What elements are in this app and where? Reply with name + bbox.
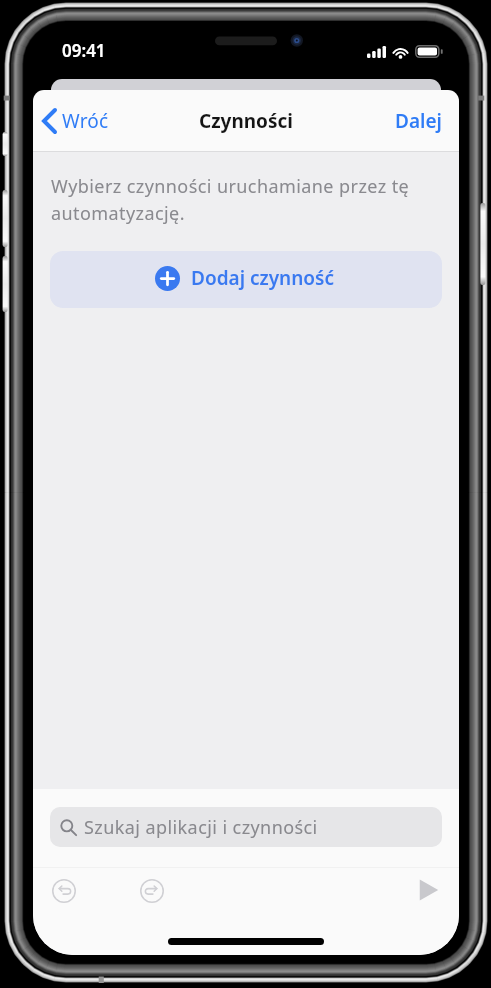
button[interactable]: Dodaj czynność bbox=[50, 251, 442, 308]
staticText: Dodaj czynność bbox=[191, 265, 334, 291]
staticText: Czynności bbox=[199, 108, 294, 134]
button[interactable]: Dalej bbox=[389, 102, 448, 140]
button[interactable]: Redo bbox=[140, 879, 164, 903]
staticText: Dalej bbox=[395, 108, 442, 134]
button[interactable]: Szukaj aplikacji i czynności bbox=[50, 807, 442, 847]
button[interactable]: Wróć bbox=[36, 102, 115, 140]
button[interactable]: Undo bbox=[52, 879, 76, 903]
staticText: Wróć bbox=[62, 108, 109, 134]
staticText: 09:41 bbox=[62, 39, 106, 62]
staticText: Szukaj aplikacji i czynności bbox=[84, 815, 318, 840]
staticText: Wybierz czynności uruchamiane przez tę a… bbox=[51, 174, 423, 225]
button[interactable]: Run bbox=[418, 879, 440, 901]
